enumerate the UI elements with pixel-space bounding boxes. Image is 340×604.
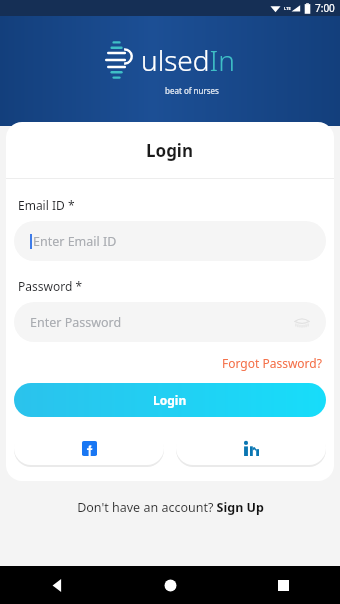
staticText: ulsedIn [141,41,235,79]
button[interactable]: Login [14,383,326,417]
staticText: Login [153,392,187,408]
button[interactable]: Enter Password [14,302,326,342]
staticText: LTE [284,6,291,11]
staticText: Password * [18,278,83,294]
staticText: Enter Email ID [33,233,117,250]
staticText: Email ID * [18,197,75,213]
staticText: Login [146,139,194,162]
staticText: 7:00 [315,1,335,15]
staticText: Enter Password [30,314,122,331]
button[interactable]: Don't have an account? Sign Up [71,496,270,519]
staticText: Don't have an account? Sign Up [77,499,264,516]
button[interactable]: Show password [294,316,310,328]
button[interactable]: Recent apps [227,566,340,604]
button[interactable]: Back [0,566,114,604]
button[interactable]: Forgot Password? [218,353,326,373]
button[interactable]: Facebook [14,431,164,465]
button[interactable]: Home [114,566,227,604]
button[interactable]: LinkedIn [176,431,326,465]
button[interactable]: Enter Email ID [14,221,326,261]
staticText: Forgot Password? [222,355,322,371]
staticText: beat of nurses [165,85,219,96]
